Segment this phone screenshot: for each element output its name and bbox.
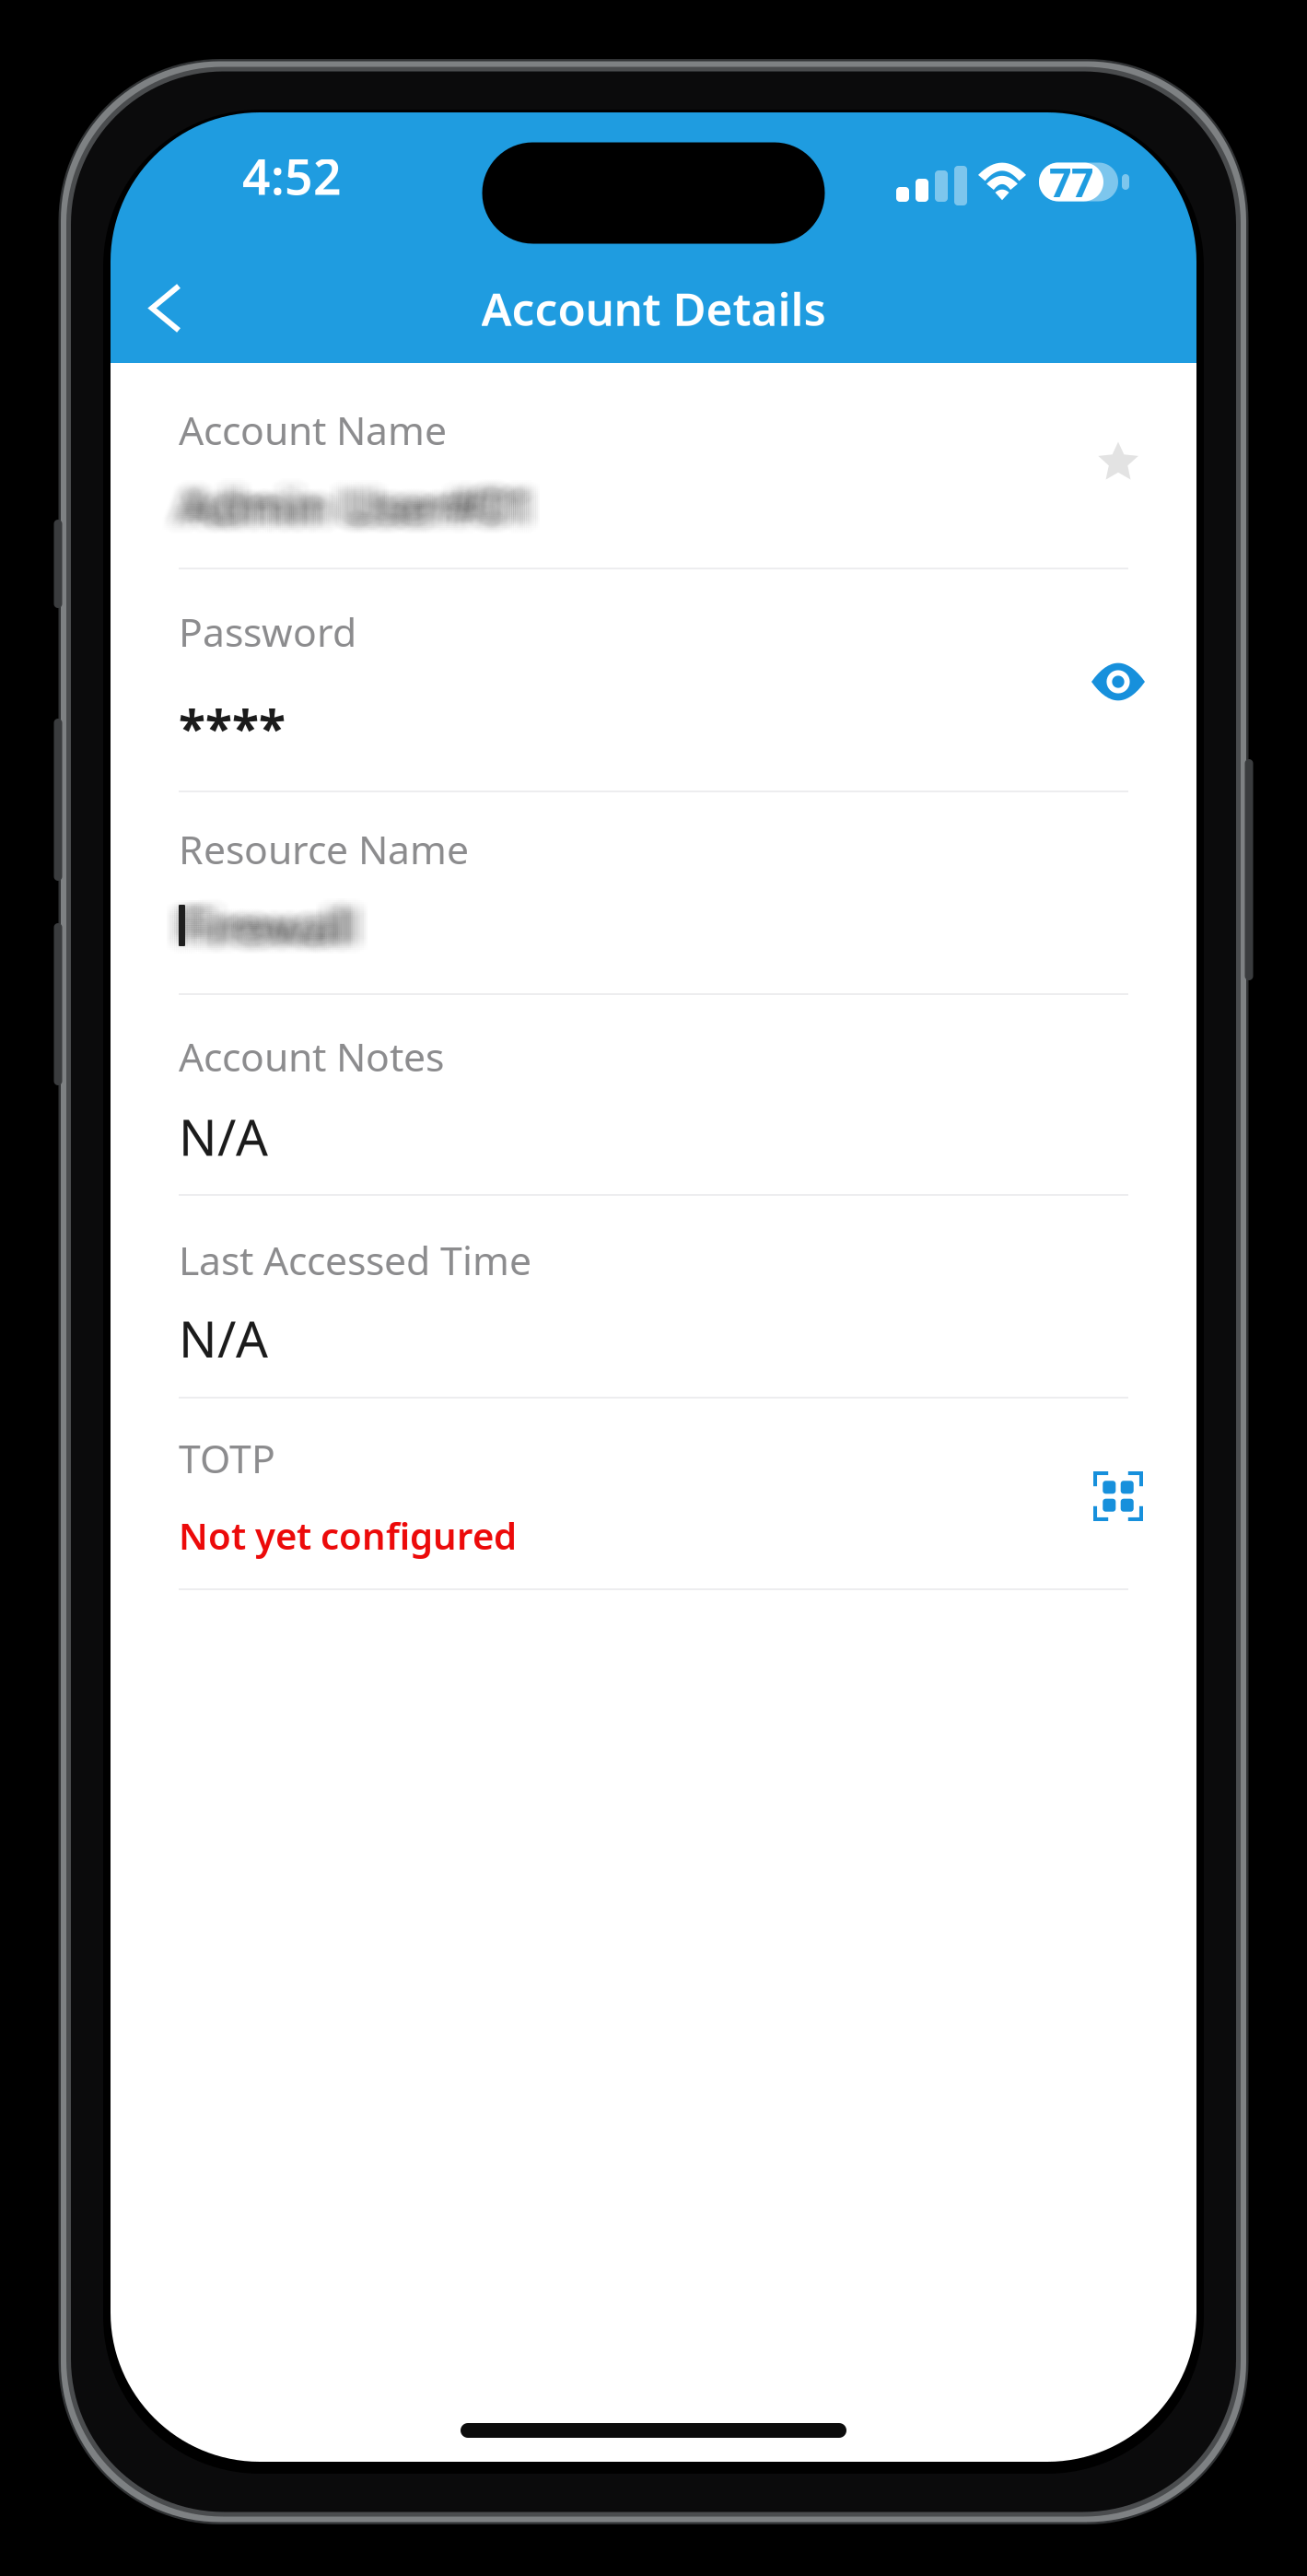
staticText: Firewall	[173, 899, 349, 963]
staticText: Firewall	[169, 896, 345, 959]
staticText: Firewall	[193, 888, 369, 952]
staticText: Firewall	[166, 886, 342, 950]
staticText: Firewall	[173, 884, 349, 948]
staticText: Admin User#01	[190, 481, 544, 545]
staticText: Admin User#01	[173, 483, 528, 546]
staticText: Firewall	[177, 888, 353, 952]
staticText: Firewall	[173, 886, 349, 950]
staticText: Account Notes	[179, 1030, 444, 1082]
staticText: Admin User#01	[173, 479, 528, 543]
staticText: Admin User#01	[184, 470, 539, 534]
staticText: Firewall	[190, 892, 366, 955]
staticText: Admin User#01	[188, 470, 543, 534]
staticText: Firewall	[162, 888, 338, 952]
staticText: TOTP	[179, 1432, 275, 1484]
staticText: Firewall	[179, 884, 355, 948]
staticText: Admin User#01	[193, 479, 548, 543]
staticText: Firewall	[195, 892, 371, 955]
staticText: Admin User#01	[188, 468, 543, 532]
staticText: Firewall	[175, 890, 351, 954]
button[interactable]: Show password	[1076, 639, 1161, 724]
staticText: Firewall	[186, 888, 362, 952]
staticText: Admin User#01	[182, 468, 537, 532]
staticText: Firewall	[177, 897, 353, 961]
staticText: Admin User#01	[175, 477, 530, 541]
staticText: Admin User#01	[182, 472, 537, 535]
staticText: Firewall	[193, 897, 369, 961]
staticText: Firewall	[190, 896, 366, 959]
staticText: Firewall	[173, 894, 349, 957]
staticText: Admin User#01	[193, 474, 548, 537]
staticText: Admin User#01	[184, 472, 539, 535]
staticText: Firewall	[184, 894, 360, 957]
staticText: Admin User#01	[177, 474, 531, 537]
staticText: Admin User#01	[177, 481, 531, 545]
staticText: Admin User#01	[162, 472, 517, 535]
staticText: Admin User#01	[177, 466, 531, 530]
staticText: Admin User#01	[177, 470, 531, 534]
staticText: Admin User#01	[162, 468, 517, 532]
staticText: Firewall	[184, 896, 360, 959]
staticText: Admin User#01	[171, 483, 526, 546]
staticText: Admin User#01	[188, 483, 543, 546]
staticText: Admin User#01	[179, 479, 533, 543]
staticText: Admin User#01	[188, 472, 543, 535]
staticText: Firewall	[168, 899, 344, 963]
staticText: Firewall	[173, 901, 349, 965]
staticText: Admin User#01	[168, 481, 522, 545]
staticText: Firewall	[164, 899, 340, 963]
staticText: Admin User#01	[181, 472, 535, 535]
staticText: Firewall	[186, 903, 362, 967]
staticText: Firewall	[188, 892, 364, 955]
staticText: Admin User#01	[184, 474, 539, 537]
staticText: Admin User#01	[192, 470, 546, 534]
staticText: Admin User#01	[175, 466, 530, 530]
staticText: Firewall	[181, 899, 356, 963]
staticText: Admin User#01	[169, 481, 524, 545]
staticText: Admin User#01	[186, 466, 541, 530]
button[interactable]: Scan TOTP QR code	[1076, 1454, 1161, 1539]
staticText: Firewall	[181, 897, 356, 961]
staticText: Firewall	[188, 897, 364, 961]
staticText: Firewall	[182, 903, 358, 967]
staticText: Firewall	[184, 886, 360, 950]
staticText: Admin User#01	[173, 470, 528, 534]
staticText: Firewall	[184, 903, 360, 967]
staticText: Firewall	[175, 901, 351, 965]
staticText: Firewall	[171, 897, 347, 961]
button[interactable]: Back	[111, 252, 249, 364]
staticText: Firewall	[184, 888, 360, 952]
staticText: Firewall	[168, 886, 344, 950]
staticText: Firewall	[166, 888, 342, 952]
staticText: Admin User#01	[179, 472, 533, 535]
button[interactable]: Favorite	[1076, 420, 1161, 505]
staticText: Firewall	[179, 886, 355, 950]
staticText: Admin User#01	[177, 477, 531, 541]
staticText: Admin User#01	[195, 470, 550, 534]
staticText: Firewall	[184, 890, 360, 954]
staticText: Admin User#01	[177, 479, 531, 543]
staticText: Admin User#01	[166, 474, 520, 537]
staticText: Firewall	[186, 886, 362, 950]
staticText: Admin User#01	[168, 466, 522, 530]
staticText: Firewall	[171, 890, 347, 954]
staticText: Firewall	[168, 896, 344, 959]
staticText: Firewall	[190, 888, 366, 952]
staticText: Firewall	[188, 901, 364, 965]
staticText: Firewall	[171, 888, 347, 952]
staticText: Admin User#01	[184, 481, 539, 545]
staticText: Firewall	[173, 897, 349, 961]
staticText: Firewall	[192, 892, 368, 955]
staticText: Admin User#01	[182, 481, 537, 545]
staticText: Firewall	[192, 888, 368, 952]
staticText: Admin User#01	[173, 464, 528, 528]
staticText: Firewall	[188, 888, 364, 952]
staticText: Firewall	[186, 892, 362, 955]
staticText: Firewall	[179, 899, 355, 963]
staticText: 77	[1049, 156, 1093, 208]
staticText: Admin User#01	[192, 474, 546, 537]
staticText: Admin User#01	[186, 477, 541, 541]
staticText: Firewall	[195, 896, 371, 959]
staticText: Admin User#01	[164, 475, 519, 539]
staticText: Firewall	[164, 896, 340, 959]
